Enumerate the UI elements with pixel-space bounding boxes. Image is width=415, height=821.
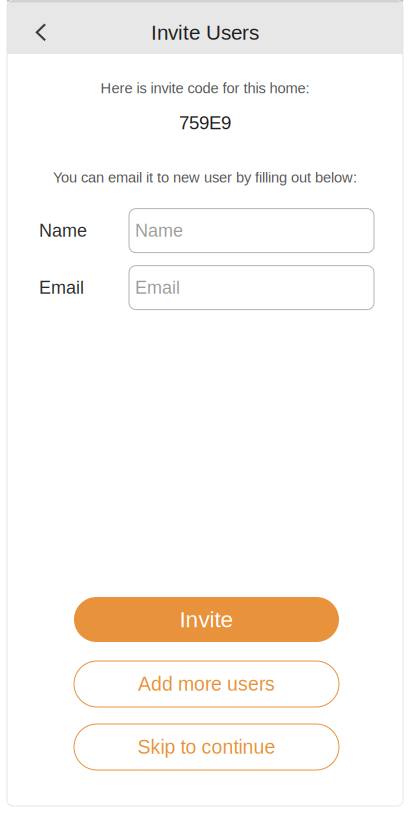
button[interactable]: Invite <box>74 597 339 642</box>
staticText: You can email it to new user by filling … <box>53 169 357 186</box>
staticText: Add more users <box>138 673 275 695</box>
button[interactable]: Add more users <box>74 661 339 707</box>
staticText: Name <box>39 221 87 241</box>
staticText: Email <box>39 278 84 298</box>
button[interactable]: Email <box>129 266 374 310</box>
staticText: Here is invite code for this home: <box>100 80 309 96</box>
button[interactable]: Back <box>20 11 62 53</box>
staticText: 759E9 <box>179 112 231 133</box>
button[interactable]: Name <box>129 209 374 253</box>
staticText: Invite <box>179 607 233 632</box>
staticText: Name <box>135 221 183 241</box>
button[interactable]: Skip to continue <box>74 724 339 770</box>
staticText: Invite Users <box>151 21 259 44</box>
staticText: Email <box>135 278 180 298</box>
staticText: Skip to continue <box>137 736 275 758</box>
